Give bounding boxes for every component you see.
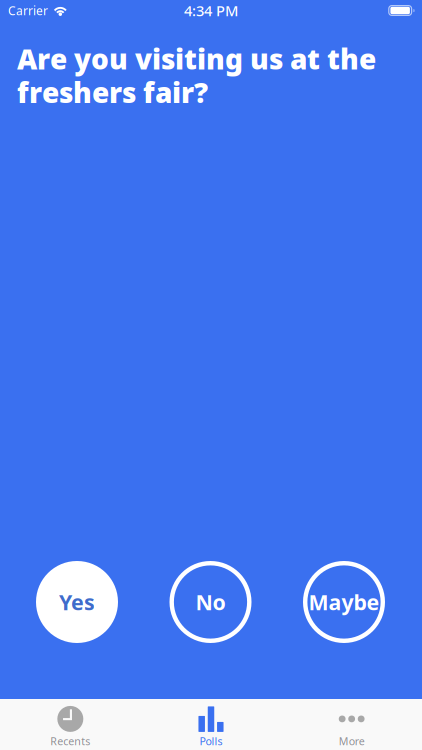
- button[interactable]: Answer Yes: [36, 561, 118, 643]
- staticText: Yes: [59, 588, 95, 616]
- button[interactable]: Answer No: [169, 561, 251, 643]
- button[interactable]: Polls: [141, 698, 281, 750]
- staticText: More: [339, 734, 365, 748]
- staticText: Carrier: [8, 2, 48, 18]
- button[interactable]: Answer Maybe: [303, 561, 385, 643]
- button[interactable]: More: [281, 698, 422, 750]
- staticText: No: [195, 588, 225, 616]
- button[interactable]: Recents: [0, 698, 141, 750]
- staticText: 4:34 PM: [184, 1, 238, 20]
- staticText: freshers fair?: [17, 73, 208, 111]
- staticText: Maybe: [308, 588, 379, 616]
- staticText: Polls: [199, 734, 222, 748]
- staticText: Are you visiting us at the: [17, 40, 376, 77]
- staticText: Recents: [50, 734, 90, 748]
